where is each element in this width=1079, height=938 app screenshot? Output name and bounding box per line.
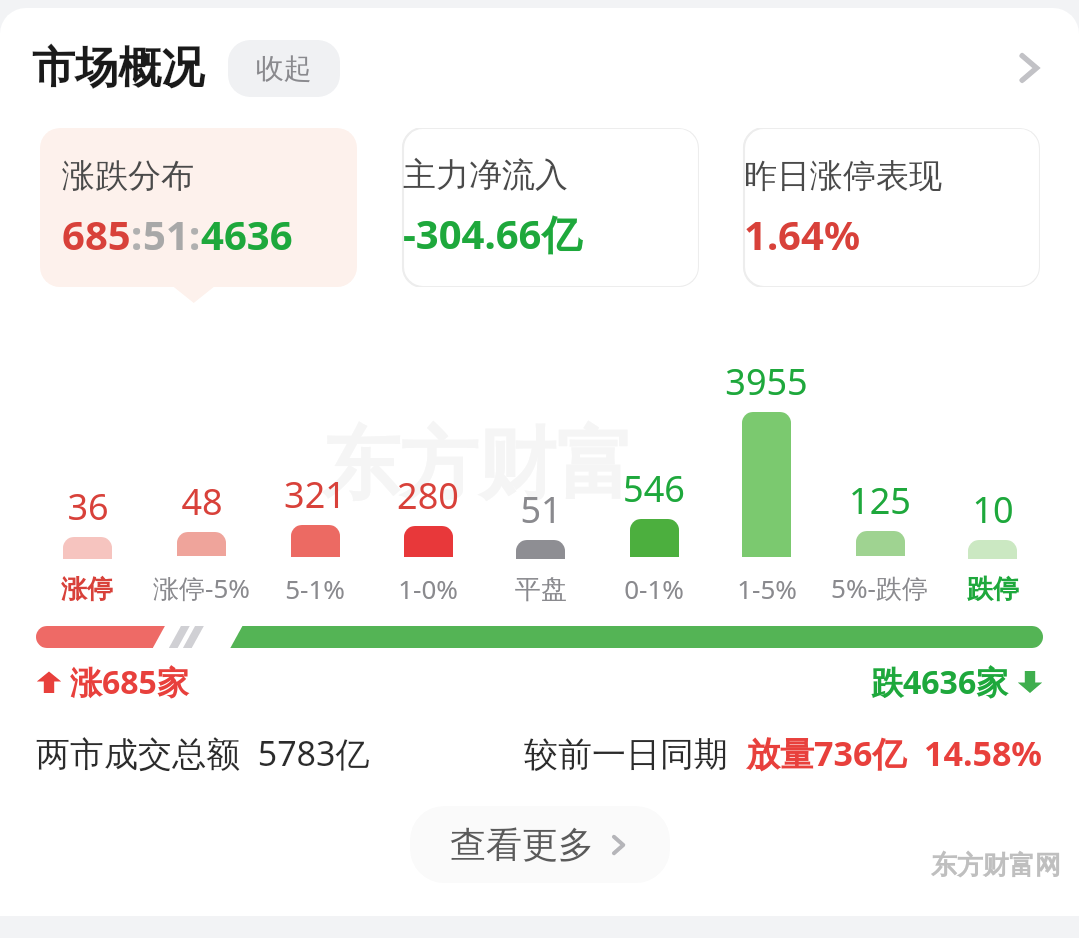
staticText: 0-1% [624,571,684,606]
staticText: 1-5% [737,571,797,606]
staticText: 东方财富 [322,416,634,514]
staticText: 321 [284,470,346,519]
staticText: 3955 [725,357,808,406]
staticText: 51 [520,485,562,534]
button[interactable]: 涨跌分布 [40,128,357,287]
staticText: 放量736亿 14.58% [746,730,1043,776]
staticText: 查看更多 [450,822,594,867]
button[interactable]: 收起 [228,40,340,97]
staticText: 市场概况 [32,41,204,95]
staticText: 收起 [256,51,312,86]
staticText: 5%-跌停 [831,570,928,606]
staticText: : [189,207,201,261]
staticText: 4636 [201,207,293,261]
staticText: 较前一日同期 [524,730,746,776]
staticText: 涨停 [61,573,113,606]
staticText: 280 [397,471,459,520]
staticText: 36 [67,482,109,531]
button[interactable]: 主力净流入 [381,128,699,287]
staticText: -304.66亿 [403,206,582,261]
staticText: : [131,207,143,261]
button[interactable]: 展开市场概况 [999,38,1059,98]
staticText: 跌4636家 [871,660,1009,704]
button[interactable]: 昨日涨停表现 [722,128,1040,287]
staticText: 685 [62,207,131,261]
staticText: 涨停-5% [153,570,250,606]
staticText: 48 [181,477,223,526]
staticText: 1-0% [398,571,458,606]
staticText: 昨日涨停表现 [744,155,942,197]
staticText: 跌停 [967,573,1019,606]
staticText: 546 [623,464,685,513]
staticText: 1.64% [744,207,860,261]
staticText: 两市成交总额 5783亿 [36,730,370,776]
staticText: 涨685家 [70,660,189,704]
staticText: 51 [143,207,189,261]
staticText: 10 [972,485,1014,534]
staticText: 125 [849,476,911,525]
staticText: 平盘 [515,573,567,606]
button[interactable]: 查看更多 [410,806,670,883]
staticText: 涨跌分布 [62,155,194,197]
staticText: 5-1% [285,571,345,606]
staticText: 主力净流入 [403,154,568,196]
staticText: 东方财富网 [931,849,1061,882]
